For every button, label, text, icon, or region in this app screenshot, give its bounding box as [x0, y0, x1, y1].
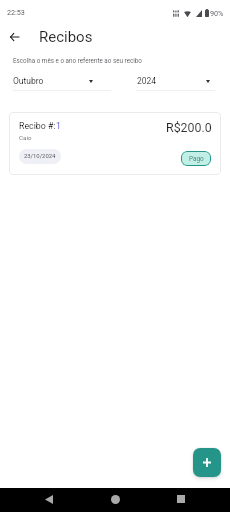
button[interactable]: Pago [181, 151, 211, 166]
staticText: Caio [19, 134, 32, 141]
staticText: 90% [210, 9, 224, 17]
staticText: 2024 [137, 76, 157, 86]
staticText: 23/10/2024 [24, 153, 56, 160]
button[interactable]: Add receipt [193, 448, 221, 477]
button[interactable]: Recent apps [158, 487, 204, 511]
staticText: Recibos [39, 28, 93, 46]
button[interactable]: Back [2, 24, 27, 49]
button[interactable]: Home [92, 487, 138, 511]
staticText: Pago [189, 155, 204, 163]
button[interactable]: 2024 [136, 71, 215, 91]
staticText: 1 [56, 121, 61, 131]
staticText: Outubro [13, 76, 44, 86]
button[interactable]: Outubro [13, 71, 111, 91]
staticText: Escolha o mês e o ano referente ao seu r… [13, 57, 142, 64]
button[interactable]: Recibo #: [9, 112, 221, 175]
staticText: R$200.0 [166, 120, 212, 135]
button[interactable]: Back [26, 487, 72, 511]
staticText: 22:53 [7, 8, 25, 16]
staticText: Recibo #: [19, 121, 56, 131]
